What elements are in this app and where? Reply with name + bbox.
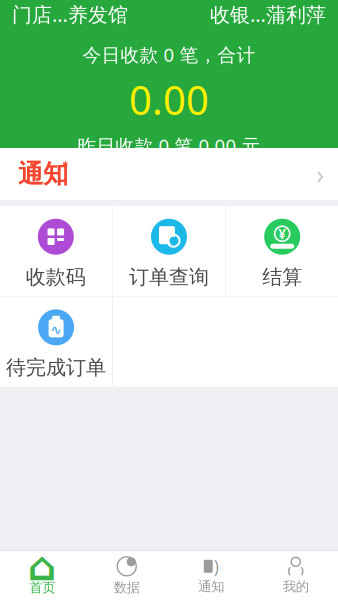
staticText: 首页 — [29, 579, 55, 596]
button[interactable]: 收银…蒲利萍 — [200, 0, 336, 33]
staticText: ) — [214, 555, 219, 578]
staticText: › — [316, 156, 324, 192]
staticText: 订单查询 — [129, 265, 209, 289]
button[interactable]: 订单查询 — [113, 206, 225, 296]
staticText: 通知 — [18, 158, 68, 189]
staticText: 我的 — [283, 578, 309, 595]
staticText: 0.00 — [129, 73, 209, 126]
staticText: 收银…蒲利萍 — [210, 1, 326, 27]
staticText: 数据 — [114, 579, 140, 596]
staticText: 结算 — [262, 265, 302, 289]
button[interactable]: ) — [169, 553, 253, 598]
button[interactable]: ¥ — [226, 206, 338, 296]
staticText: ＊ — [59, 159, 71, 173]
staticText: ∿ — [51, 322, 62, 337]
staticText: 门店…养发馆 — [12, 1, 128, 27]
staticText: 今日收款 0 笔，合计 — [82, 42, 255, 67]
button[interactable]: 数据 — [84, 553, 169, 598]
staticText: 待完成订单 — [6, 355, 106, 380]
button[interactable]: 通知 — [0, 148, 338, 200]
button[interactable]: 门店…养发馆 — [2, 0, 138, 33]
staticText: 收款码 — [26, 265, 86, 289]
button[interactable]: ∿ — [0, 297, 112, 387]
button[interactable]: 收款码 — [0, 206, 112, 296]
button[interactable]: 我的 — [253, 553, 338, 598]
staticText: ⌂ — [28, 544, 57, 589]
button[interactable]: ⌂ — [0, 553, 84, 598]
staticText: 昨日收款 0 笔 0.00 元 — [77, 133, 260, 158]
staticText: ¥ — [278, 225, 286, 243]
staticText: 通知 — [198, 578, 224, 595]
